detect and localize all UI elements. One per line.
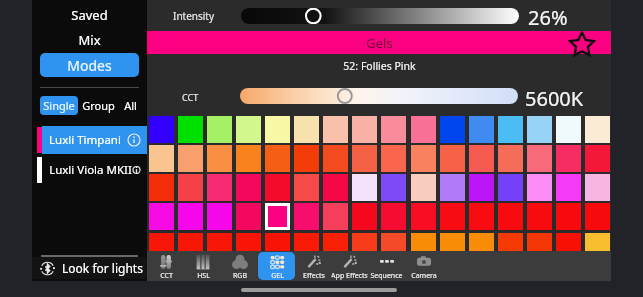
button[interactable]: Look for lights <box>32 257 147 279</box>
button[interactable]: App Effects <box>331 252 368 280</box>
button[interactable]: GEL <box>258 252 295 280</box>
button[interactable]: Sequence <box>368 252 405 280</box>
button[interactable]: Luxli Viola MKII <box>32 156 147 184</box>
staticText: CCT <box>160 271 173 280</box>
button[interactable]: Group <box>82 96 115 115</box>
button[interactable]: All <box>124 96 137 115</box>
button[interactable]: HSL <box>184 252 221 280</box>
button[interactable]: Luxli Timpani <box>32 126 147 154</box>
button[interactable]: Gels <box>147 31 611 54</box>
button[interactable] <box>241 8 519 24</box>
button[interactable]: CCT <box>147 252 184 280</box>
button[interactable]: Favorite <box>569 32 595 58</box>
button[interactable]: Effects <box>295 252 332 280</box>
button[interactable] <box>265 203 290 230</box>
button[interactable] <box>240 88 518 104</box>
button[interactable]: Modes <box>40 53 139 77</box>
button[interactable]: RGB <box>221 252 258 280</box>
button[interactable]: Single <box>40 96 78 115</box>
button[interactable]: Camera <box>405 252 442 280</box>
